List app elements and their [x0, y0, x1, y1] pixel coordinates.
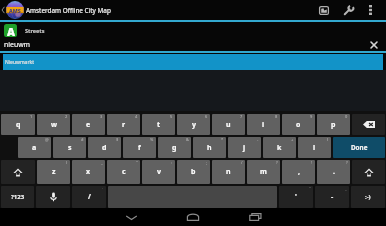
staticText: $: [116, 137, 119, 142]
staticText: /: [241, 160, 243, 165]
staticText: l: [313, 143, 316, 153]
button[interactable]: i: [247, 114, 280, 135]
staticText: y: [192, 120, 196, 130]
button[interactable]: c: [107, 160, 140, 184]
button[interactable]: -: [315, 186, 349, 208]
button[interactable]: Clear text: [367, 38, 381, 51]
button[interactable]: ,: [282, 160, 315, 184]
button[interactable]: Nieuwmarkt: [3, 54, 383, 70]
staticText: Amsterdam Offline City Map: [26, 6, 111, 15]
button[interactable]: d: [88, 137, 121, 158]
staticText: 3: [100, 114, 103, 119]
staticText: p: [331, 120, 336, 130]
button[interactable]: z: [37, 160, 70, 184]
staticText: A: [7, 24, 15, 37]
button[interactable]: y: [177, 114, 210, 135]
staticText: ?: [346, 160, 348, 165]
staticText: :-): [365, 193, 371, 201]
staticText: q: [16, 120, 21, 130]
button[interactable]: b: [177, 160, 210, 184]
button[interactable]: t: [142, 114, 175, 135]
button[interactable]: v: [142, 160, 175, 184]
button[interactable]: :-): [351, 186, 385, 208]
staticText: b: [191, 167, 196, 177]
staticText: v: [157, 167, 161, 177]
staticText: 7: [240, 114, 243, 119]
button[interactable]: Map view: [312, 0, 336, 20]
staticText: AMS: [9, 7, 21, 14]
button[interactable]: ?123: [1, 186, 34, 208]
button[interactable]: A: [0, 22, 386, 38]
button[interactable]: s: [53, 137, 86, 158]
button[interactable]: g: [158, 137, 191, 158]
staticText: e: [86, 120, 91, 130]
button[interactable]: x: [72, 160, 105, 184]
staticText: Nieuwmarkt: [5, 59, 34, 66]
button[interactable]: ': [279, 186, 313, 208]
button[interactable]: w: [37, 114, 70, 135]
staticText: ;: [206, 160, 208, 165]
button[interactable]: Shift: [352, 160, 385, 184]
staticText: 1: [30, 114, 33, 119]
staticText: +: [291, 137, 294, 142]
button[interactable]: l: [298, 137, 331, 158]
staticText: a: [32, 143, 37, 153]
staticText: ·: [102, 186, 104, 191]
staticText: f: [138, 143, 141, 153]
staticText: Done: [351, 143, 368, 152]
staticText: _: [101, 160, 103, 165]
staticText: 8: [275, 114, 278, 119]
staticText: d: [102, 143, 107, 153]
staticText: o: [296, 120, 301, 130]
staticText: &: [186, 137, 189, 142]
staticText: %: [150, 137, 154, 142]
button[interactable]: j: [228, 137, 261, 158]
button[interactable]: o: [282, 114, 315, 135]
button[interactable]: Recent apps: [224, 208, 286, 226]
staticText: 4: [135, 114, 138, 119]
staticText: ': [295, 192, 297, 202]
button[interactable]: Voice input: [36, 186, 70, 208]
staticText: ?: [276, 160, 278, 165]
staticText: @: [45, 137, 49, 142]
button[interactable]: n: [212, 160, 245, 184]
button[interactable]: p: [317, 114, 350, 135]
staticText: u: [226, 120, 231, 130]
button[interactable]: Home: [162, 208, 224, 226]
button[interactable]: m: [247, 160, 280, 184]
button[interactable]: /: [72, 186, 106, 208]
staticText: 6: [205, 114, 208, 119]
button[interactable]: h: [193, 137, 226, 158]
staticText: ": [309, 186, 311, 191]
staticText: 5: [170, 114, 173, 119]
button[interactable]: u: [212, 114, 245, 135]
button[interactable]: AMS: [0, 0, 111, 20]
button[interactable]: More options: [360, 0, 380, 20]
staticText: ": [136, 160, 138, 165]
button[interactable]: q: [1, 114, 35, 135]
staticText: -: [257, 137, 259, 142]
button[interactable]: Backspace: [352, 114, 385, 135]
staticText: !: [311, 160, 313, 165]
staticText: k: [277, 143, 282, 153]
button[interactable]: Settings: [336, 0, 360, 20]
staticText: *: [221, 137, 224, 142]
button[interactable]: r: [107, 114, 140, 135]
button[interactable]: f: [123, 137, 156, 158]
button[interactable]: e: [72, 114, 105, 135]
staticText: n: [226, 167, 231, 177]
staticText: -: [331, 192, 334, 202]
button[interactable]: Back: [100, 208, 162, 226]
button[interactable]: k: [263, 137, 296, 158]
button[interactable]: Shift: [1, 160, 35, 184]
button[interactable]: .: [317, 160, 350, 184]
button[interactable]: Done: [333, 137, 385, 158]
staticText: w: [51, 120, 57, 130]
staticText: nieuwm: [4, 40, 31, 49]
staticText: t: [157, 120, 161, 130]
staticText: s: [68, 143, 72, 153]
button[interactable]: a: [18, 137, 51, 158]
staticText: j: [243, 143, 246, 153]
staticText: :: [171, 160, 173, 165]
